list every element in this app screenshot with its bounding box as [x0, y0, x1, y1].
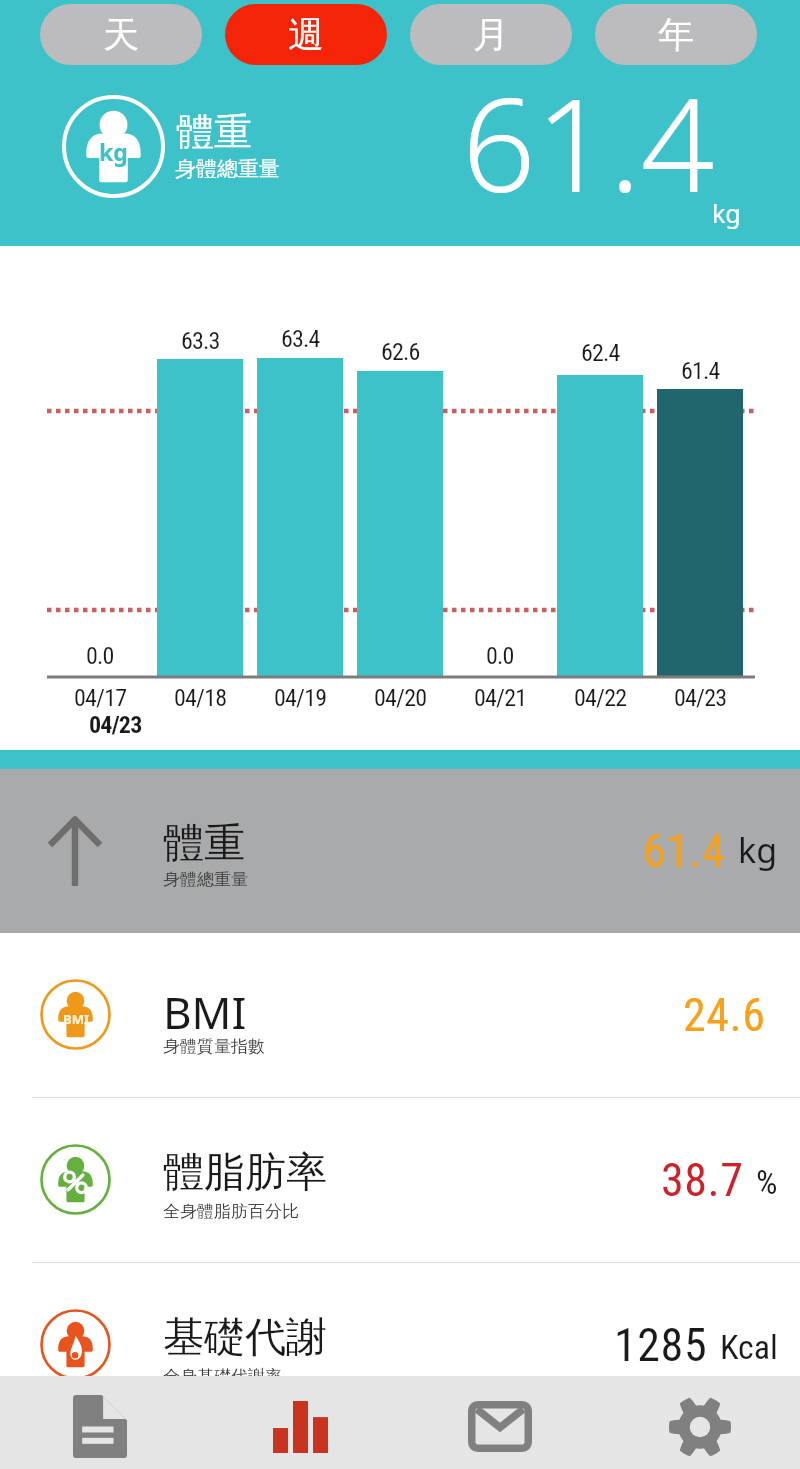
button[interactable]: 天	[40, 4, 202, 65]
staticText: 身體總重量	[163, 869, 248, 890]
staticText: 身體質量指數	[163, 1036, 265, 1057]
staticText: 04/20	[374, 684, 427, 712]
button[interactable]: 基礎代謝	[0, 1263, 800, 1427]
staticText: 61.4	[462, 54, 715, 230]
staticText: kg	[99, 136, 128, 167]
staticText: %	[756, 1162, 778, 1202]
staticText: 24.6	[683, 988, 766, 1042]
staticText: 62.6	[381, 338, 420, 366]
staticText: Kcal	[720, 1327, 778, 1367]
staticText: 62.4	[581, 339, 620, 367]
staticText: 04/17	[74, 684, 127, 712]
button[interactable]: Charts	[200, 1376, 400, 1469]
staticText: BMI	[63, 1010, 89, 1028]
staticText: kg	[712, 196, 741, 230]
button[interactable]: Settings	[600, 1376, 800, 1469]
staticText: 04/18	[174, 684, 227, 712]
staticText: 體重	[163, 818, 245, 870]
staticText: 週	[288, 12, 324, 57]
staticText: 全身體脂肪百分比	[163, 1201, 299, 1222]
button[interactable]: 週	[225, 4, 387, 65]
button[interactable]: 年	[595, 4, 757, 65]
staticText: 04/22	[574, 684, 627, 712]
staticText: 體重	[176, 108, 252, 156]
staticText: 04/23	[674, 684, 727, 712]
staticText: 0.0	[86, 642, 114, 670]
staticText: 體脂肪率	[163, 1147, 327, 1199]
staticText: 1285	[614, 1318, 708, 1372]
staticText: 61.4	[643, 824, 726, 878]
staticText: 04/23	[89, 711, 142, 739]
staticText: kg	[738, 827, 778, 873]
staticText: 全身基礎代謝率	[163, 1366, 282, 1387]
button[interactable]: Reports	[0, 1376, 200, 1469]
staticText: 61.4	[681, 357, 720, 385]
staticText: BMI	[163, 982, 247, 1042]
staticText: 04/21	[474, 684, 527, 712]
staticText: 基礎代謝	[163, 1312, 327, 1364]
staticText: 0.0	[486, 642, 514, 670]
button[interactable]: Messages	[400, 1376, 600, 1469]
staticText: 63.4	[281, 325, 320, 353]
staticText: 年	[658, 12, 694, 57]
staticText: 身體總重量	[175, 156, 280, 182]
staticText: 63.3	[181, 327, 220, 355]
staticText: 04/19	[274, 684, 327, 712]
button[interactable]: 體脂肪率	[0, 1098, 800, 1262]
staticText: 38.7	[661, 1153, 744, 1207]
button[interactable]: 月	[410, 4, 572, 65]
staticText: 月	[473, 12, 509, 57]
staticText: 天	[103, 12, 139, 57]
button[interactable]: BMI	[0, 933, 800, 1097]
button[interactable]: 體重	[0, 769, 800, 933]
